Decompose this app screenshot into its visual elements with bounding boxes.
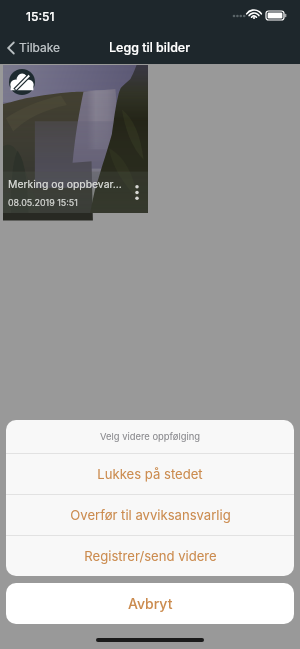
staticText: Legg til bilder — [109, 40, 191, 55]
button[interactable]: Registrer/send videre — [6, 536, 294, 576]
staticText: Overfør til avviksansvarlig — [70, 507, 231, 523]
button[interactable]: Overfør til avviksansvarlig — [6, 495, 294, 535]
button[interactable]: Offline — [3, 65, 148, 213]
staticText: Registrer/send videre — [84, 548, 217, 564]
button[interactable]: More options — [129, 177, 146, 205]
button[interactable]: Tilbake — [0, 36, 69, 59]
staticText: Velg videre oppfølging — [100, 431, 200, 442]
staticText: Tilbake — [19, 40, 61, 55]
staticText: Lukkes på stedet — [97, 466, 203, 482]
staticText: 15:51 — [26, 9, 55, 24]
staticText: Avbryt — [128, 595, 173, 612]
staticText: 08.05.2019 15:51 — [8, 197, 78, 208]
other: Offline — [9, 69, 35, 95]
button[interactable]: Avbryt — [6, 583, 294, 624]
staticText: Merking og oppbevar... — [8, 178, 122, 191]
button[interactable]: Lukkes på stedet — [6, 454, 294, 494]
